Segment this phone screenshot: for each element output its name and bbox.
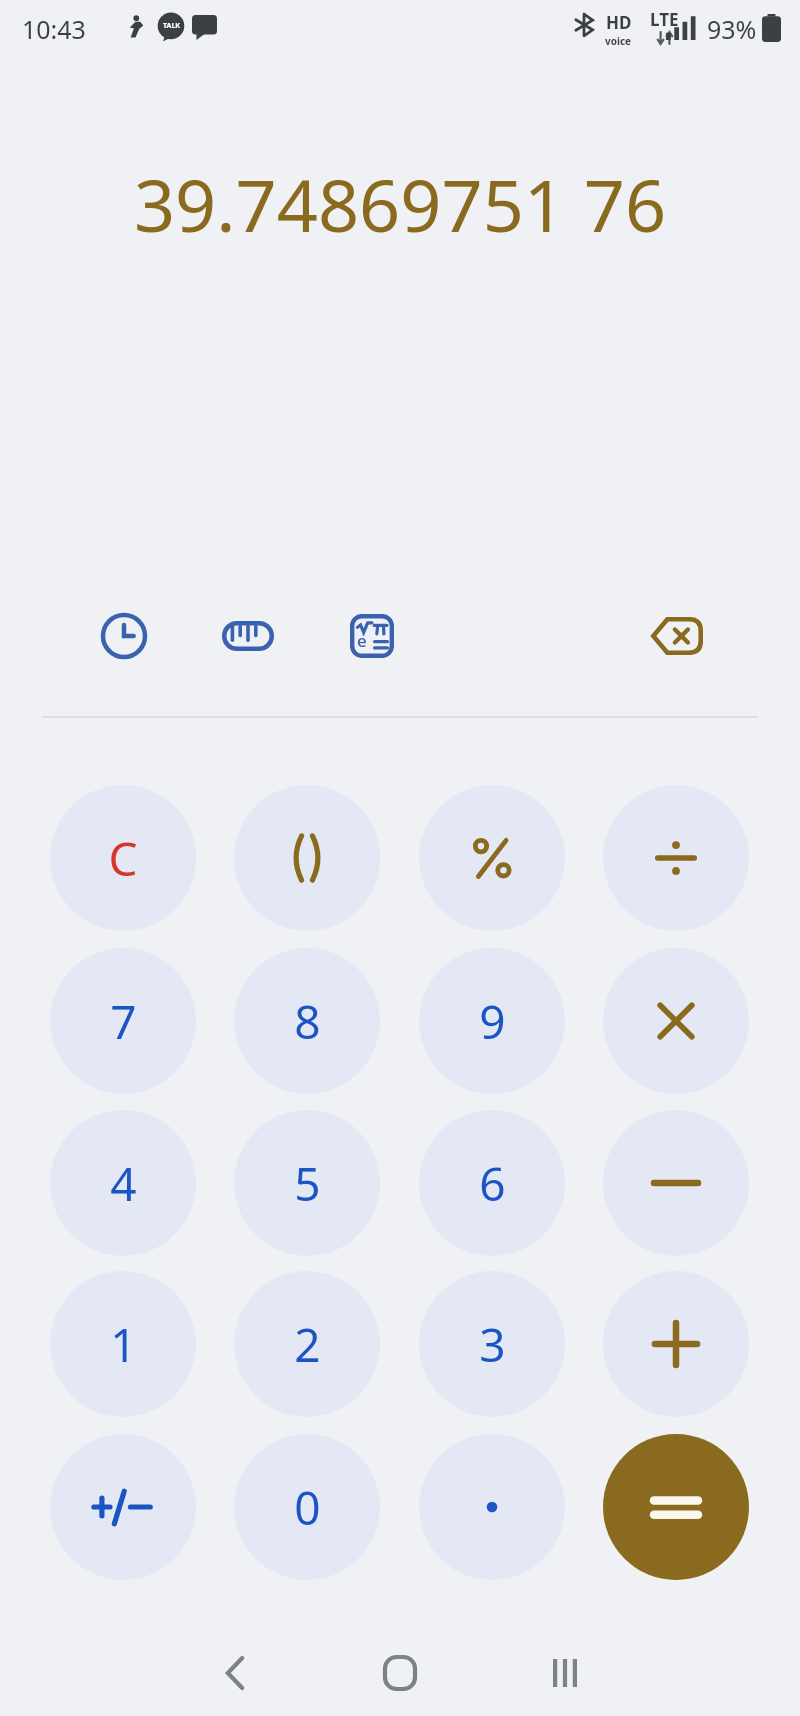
- button[interactable]: Formulas: [336, 600, 408, 672]
- button[interactable]: 6: [419, 1110, 565, 1256]
- button[interactable]: −: [603, 1110, 749, 1256]
- button[interactable]: ×: [603, 948, 749, 1094]
- staticText: 4: [110, 1152, 137, 1215]
- button[interactable]: 7: [50, 948, 196, 1094]
- staticText: 6: [479, 1152, 506, 1215]
- button[interactable]: Home: [360, 1633, 440, 1713]
- staticText: TALK: [163, 21, 180, 31]
- button[interactable]: 4: [50, 1110, 196, 1256]
- staticText: 5: [294, 1152, 321, 1215]
- staticText: 1: [110, 1313, 137, 1376]
- staticText: 8: [294, 990, 321, 1053]
- button[interactable]: +/−: [50, 1434, 196, 1580]
- button[interactable]: 8: [234, 948, 380, 1094]
- button[interactable]: %: [419, 785, 565, 931]
- staticText: 10:43: [22, 12, 86, 46]
- staticText: HD: [606, 11, 632, 34]
- button[interactable]: C: [50, 785, 196, 931]
- button[interactable]: .: [419, 1434, 565, 1580]
- staticText: 39.74869751 76: [36, 155, 764, 253]
- button[interactable]: 2: [234, 1271, 380, 1417]
- staticText: voice: [605, 34, 632, 48]
- button[interactable]: (): [234, 785, 380, 931]
- button[interactable]: 0: [234, 1434, 380, 1580]
- button[interactable]: Unit converter: [212, 600, 284, 672]
- button[interactable]: 1: [50, 1271, 196, 1417]
- button[interactable]: =: [603, 1434, 749, 1580]
- button[interactable]: +: [603, 1271, 749, 1417]
- staticText: LTE: [650, 8, 679, 31]
- button[interactable]: 3: [419, 1271, 565, 1417]
- button[interactable]: History: [88, 600, 160, 672]
- button[interactable]: ÷: [603, 785, 749, 931]
- staticText: 93%: [707, 12, 757, 46]
- staticText: 2: [294, 1313, 321, 1376]
- staticText: 9: [479, 990, 506, 1053]
- button[interactable]: 9: [419, 948, 565, 1094]
- staticText: e: [357, 629, 367, 652]
- button[interactable]: Recents: [525, 1633, 605, 1713]
- staticText: 3: [479, 1313, 506, 1376]
- staticText: 0: [294, 1476, 321, 1539]
- button[interactable]: 5: [234, 1110, 380, 1256]
- staticText: C: [108, 827, 138, 890]
- staticText: 7: [110, 990, 137, 1053]
- button[interactable]: Backspace: [640, 600, 712, 672]
- button[interactable]: Back: [195, 1633, 275, 1713]
